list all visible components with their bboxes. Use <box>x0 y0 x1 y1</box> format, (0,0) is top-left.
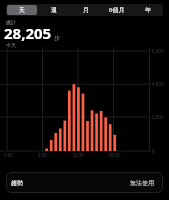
staticText: 年 <box>145 6 151 14</box>
button[interactable]: 週 <box>39 5 69 15</box>
staticText: 趨勢 <box>11 179 23 187</box>
staticText: 0:00 <box>4 152 13 158</box>
staticText: 12:00 <box>72 152 84 158</box>
staticText: 無法使用 <box>130 179 154 187</box>
staticText: 6:00 <box>38 152 47 158</box>
staticText: 月 <box>83 6 89 14</box>
staticText: 4,000 <box>152 81 164 87</box>
button[interactable]: 趨勢 <box>6 172 163 193</box>
staticText: 總計 <box>6 19 16 25</box>
staticText: 週 <box>51 6 57 14</box>
button[interactable]: 月 <box>71 5 100 15</box>
button[interactable]: 年 <box>133 5 162 15</box>
staticText: 6,000 <box>152 48 164 54</box>
staticText: 步 <box>54 34 60 42</box>
staticText: 0 <box>152 148 155 154</box>
staticText: 天 <box>19 6 25 14</box>
button[interactable]: 天 <box>7 5 37 15</box>
staticText: 今天 <box>6 42 16 48</box>
staticText: 2,000 <box>152 114 164 120</box>
button[interactable]: 6個月 <box>102 5 131 15</box>
staticText: 18:00 <box>108 152 120 158</box>
staticText: 6個月 <box>109 6 125 14</box>
staticText: 28,205 <box>4 23 52 43</box>
